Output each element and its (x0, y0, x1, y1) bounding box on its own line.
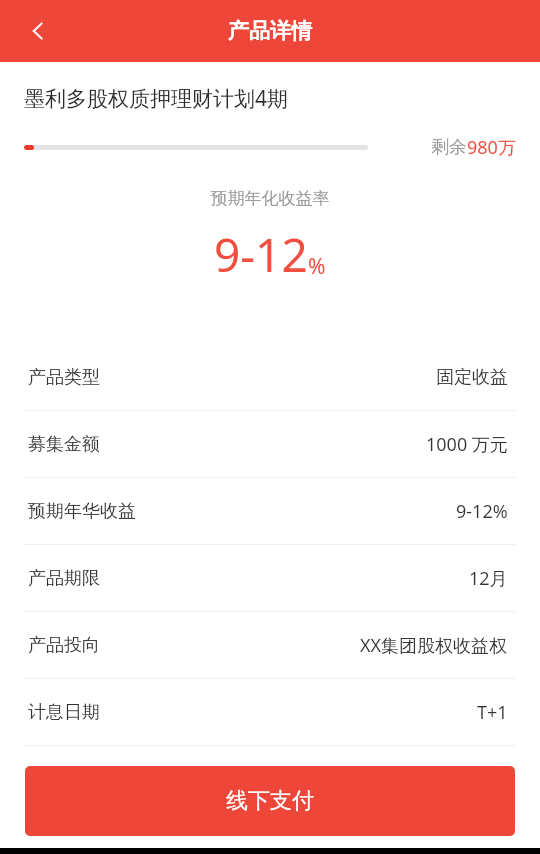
staticText: 980万 (467, 135, 516, 160)
staticText: 预期年华收益 (28, 500, 136, 523)
staticText: 1000 万元 (426, 432, 508, 457)
staticText: XX集团股权收益权 (360, 633, 508, 658)
staticText: 产品类型 (28, 366, 100, 389)
staticText: T+1 (477, 700, 508, 725)
staticText: 9-12% (456, 499, 508, 524)
button[interactable]: 产品类型 (0, 344, 540, 411)
button[interactable]: Back (14, 6, 64, 56)
button[interactable]: 产品投向 (0, 612, 540, 679)
staticText: 计息日期 (28, 701, 100, 724)
staticText: 预期年化收益率 (0, 188, 540, 209)
button[interactable]: 线下支付 (25, 766, 515, 836)
staticText: 墨利多股权质押理财计划4期 (24, 84, 289, 113)
staticText: 募集金额 (28, 433, 100, 456)
staticText: 产品详情 (228, 18, 312, 44)
button[interactable]: 产品期限 (0, 545, 540, 612)
staticText: 固定收益 (436, 366, 508, 389)
staticText: 剩余 (431, 136, 467, 159)
staticText: 12月 (469, 566, 508, 591)
staticText: 产品投向 (28, 634, 100, 657)
staticText: 产品期限 (28, 567, 100, 590)
staticText: 线下支付 (226, 787, 314, 815)
staticText: % (308, 252, 326, 281)
button[interactable]: 募集金额 (0, 411, 540, 478)
button[interactable]: 计息日期 (0, 679, 540, 746)
staticText: 9-12 (214, 223, 308, 286)
button[interactable]: 预期年华收益 (0, 478, 540, 545)
